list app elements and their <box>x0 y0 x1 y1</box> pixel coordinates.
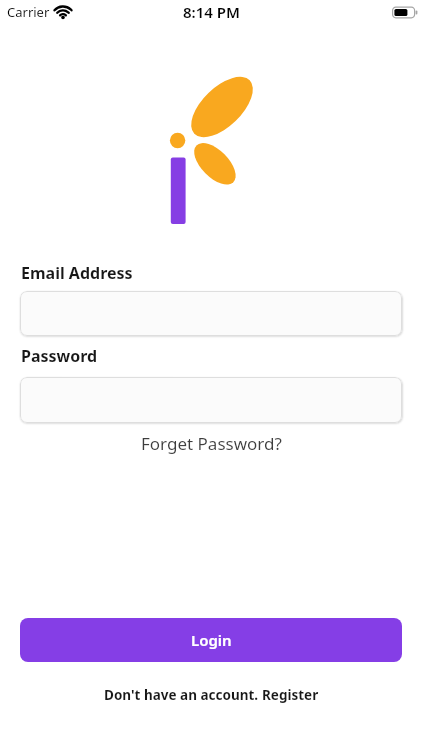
staticText: Don't have an account. <box>104 686 262 704</box>
button[interactable] <box>20 291 402 336</box>
staticText: Email Address <box>21 262 133 284</box>
staticText: Forget Password? <box>141 432 282 455</box>
staticText: Login <box>191 630 232 650</box>
button[interactable] <box>20 377 402 423</box>
staticText: 8:14 PM <box>183 2 240 22</box>
staticText: Carrier <box>7 3 50 21</box>
button[interactable]: Forget Password? <box>141 432 282 455</box>
button[interactable]: Login <box>20 618 402 662</box>
staticText: Password <box>21 345 98 367</box>
staticText: Register <box>262 686 319 704</box>
button[interactable]: Register <box>262 686 319 704</box>
